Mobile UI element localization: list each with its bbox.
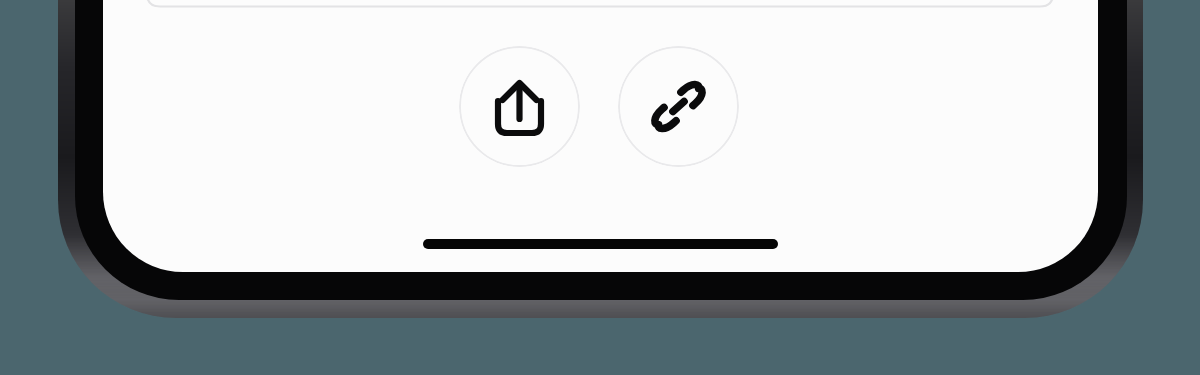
button[interactable]: Share xyxy=(459,46,580,167)
button[interactable]: Copy link xyxy=(618,46,739,167)
